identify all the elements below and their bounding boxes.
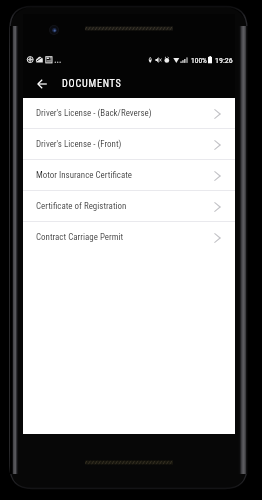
staticText: Contract Carriage Permit bbox=[36, 232, 124, 242]
staticText: Motor Insurance Certificate bbox=[36, 170, 133, 180]
staticText: 19:26 bbox=[215, 56, 233, 65]
staticText: DOCUMENTS bbox=[62, 78, 122, 90]
button[interactable]: Back bbox=[29, 71, 55, 97]
button[interactable]: Driver's License - (Back/Reverse) bbox=[23, 98, 235, 128]
staticText: Certificate of Registration bbox=[36, 201, 127, 211]
staticText: Driver's License - (Back/Reverse) bbox=[36, 108, 152, 118]
staticText: 100% bbox=[191, 56, 207, 65]
button[interactable]: Driver's License - (Front) bbox=[23, 129, 235, 159]
button[interactable]: Motor Insurance Certificate bbox=[23, 160, 235, 190]
button[interactable]: Contract Carriage Permit bbox=[23, 222, 235, 252]
staticText: Driver's License - (Front) bbox=[36, 139, 122, 149]
button[interactable]: Certificate of Registration bbox=[23, 191, 235, 221]
